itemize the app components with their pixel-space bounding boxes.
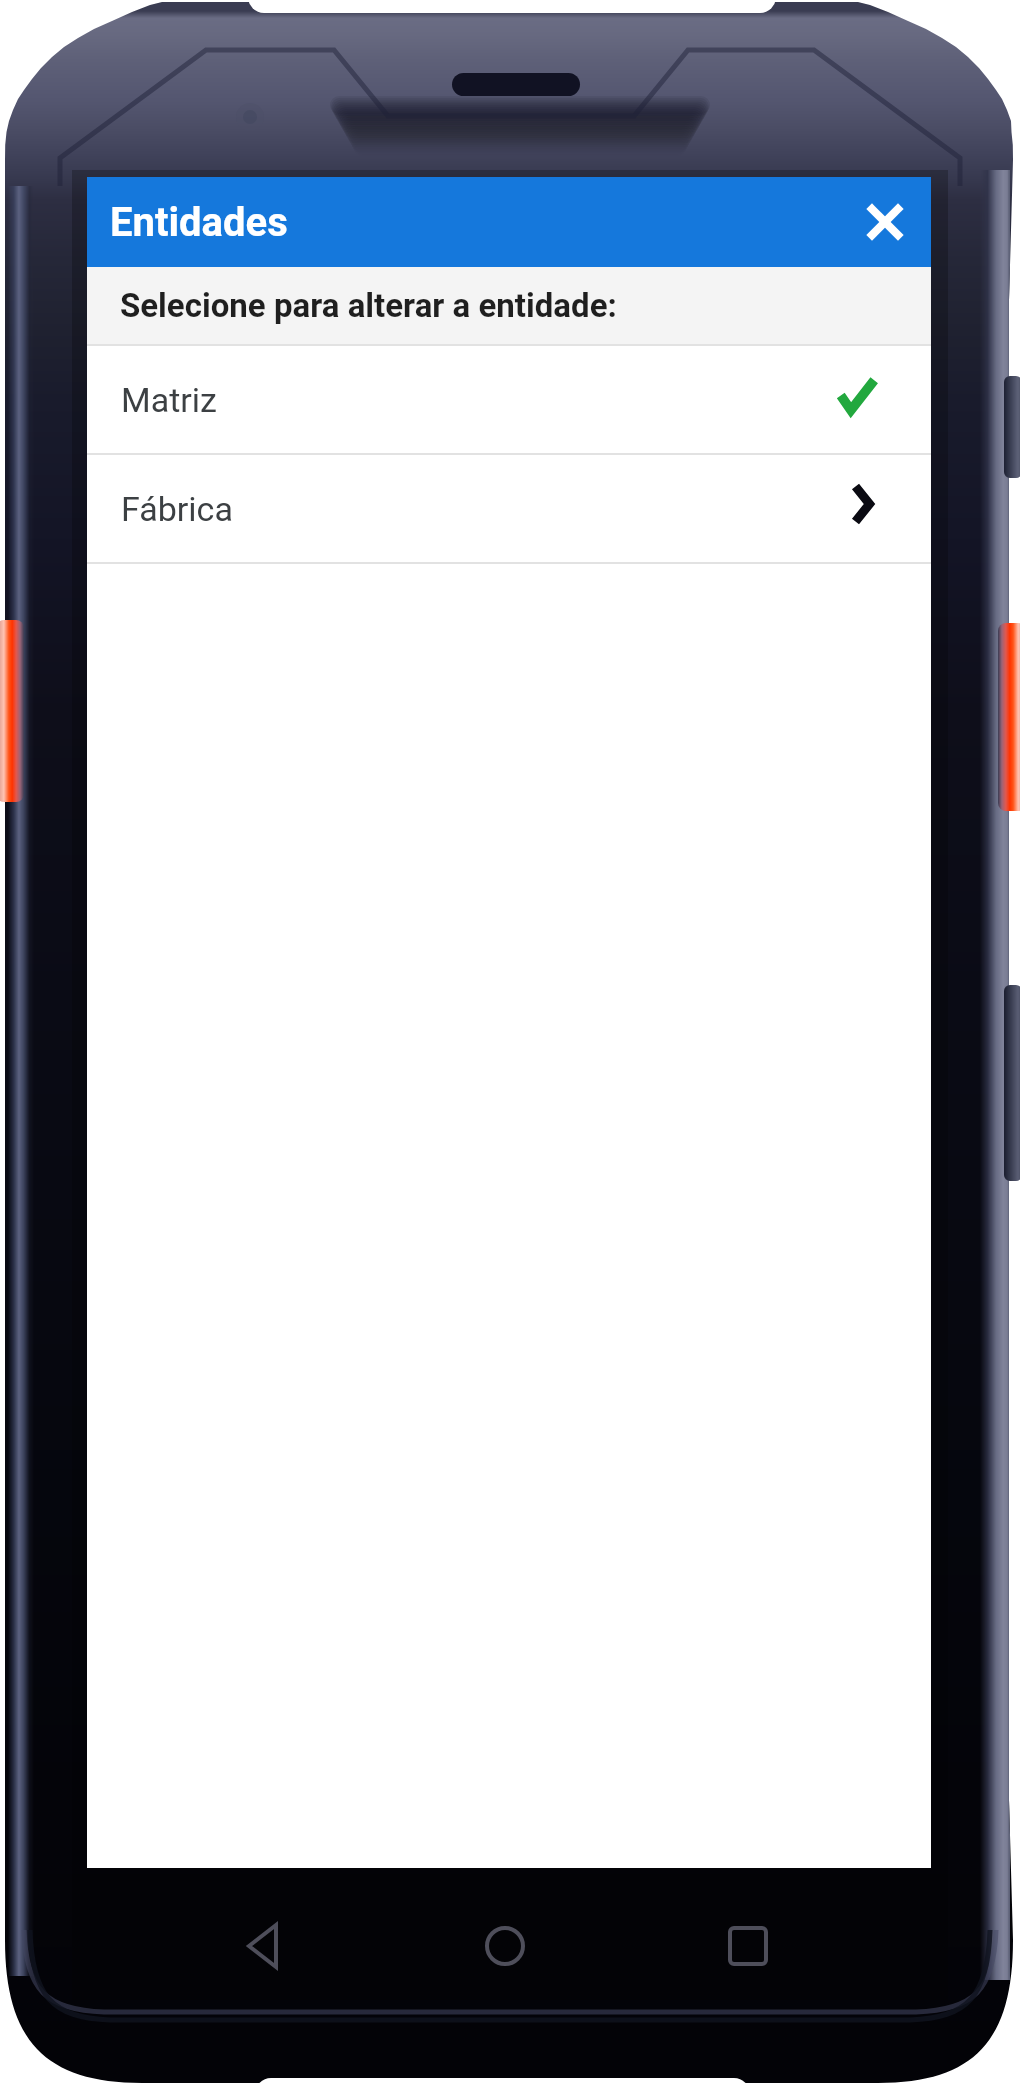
staticText: Selecione para alterar a entidade: bbox=[120, 286, 617, 325]
button[interactable]: Fechar bbox=[852, 189, 918, 255]
button[interactable]: Matriz bbox=[87, 346, 931, 453]
staticText: Entidades bbox=[110, 199, 288, 246]
staticText: Matriz bbox=[121, 380, 217, 420]
staticText: Fábrica bbox=[121, 489, 233, 529]
button[interactable]: Fábrica bbox=[87, 455, 931, 562]
